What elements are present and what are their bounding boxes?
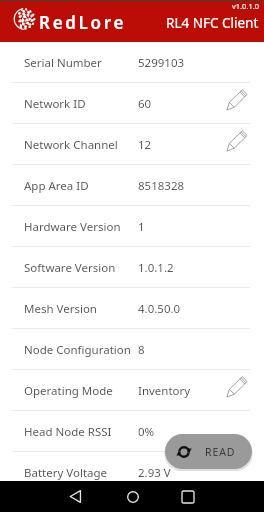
button[interactable]: Back xyxy=(60,481,91,512)
staticText: 1 xyxy=(138,219,145,235)
button[interactable]: Operating Mode xyxy=(0,370,264,411)
button[interactable]: Edit Network ID xyxy=(223,86,251,114)
staticText: Node Configuration xyxy=(24,342,131,358)
staticText: 12 xyxy=(138,137,152,153)
button[interactable]: READ xyxy=(165,434,252,469)
button[interactable]: Network ID xyxy=(0,83,264,124)
staticText: 1.0.1.2 xyxy=(138,260,174,276)
button[interactable]: Home xyxy=(117,481,148,512)
staticText: 2.93 V xyxy=(138,465,171,481)
button[interactable]: Hardware Version xyxy=(0,206,264,247)
staticText: Software Version xyxy=(24,260,116,276)
staticText: 0% xyxy=(138,424,155,440)
staticText: RL4 NFC Client xyxy=(166,14,259,32)
staticText: 60 xyxy=(138,96,152,112)
staticText: Network Channel xyxy=(24,137,118,153)
staticText: 4.0.50.0 xyxy=(138,301,181,317)
button[interactable]: Software Version xyxy=(0,247,264,288)
staticText: Head Node RSSI xyxy=(24,424,112,440)
staticText: Battery Voltage xyxy=(24,465,108,481)
staticText: v1.0.1.0 xyxy=(232,1,259,11)
staticText: 8 xyxy=(138,342,145,358)
staticText: Inventory xyxy=(138,383,191,399)
staticText: 5299103 xyxy=(138,55,185,71)
staticText: Serial Number xyxy=(24,55,102,71)
staticText: Operating Mode xyxy=(24,383,113,399)
staticText: READ xyxy=(205,445,236,459)
button[interactable]: App Area ID xyxy=(0,165,264,206)
staticText: 8518328 xyxy=(138,178,185,194)
button[interactable]: Serial Number xyxy=(0,42,264,83)
staticText: App Area ID xyxy=(24,178,89,194)
staticText: RedLore xyxy=(39,11,127,34)
button[interactable]: Head Node RSSI xyxy=(0,411,264,452)
button[interactable]: Edit Operating Mode xyxy=(223,373,251,401)
button[interactable]: Edit Network Channel xyxy=(223,127,251,155)
button[interactable]: Battery Voltage xyxy=(0,452,264,493)
button[interactable]: Network Channel xyxy=(0,124,264,165)
staticText: Network ID xyxy=(24,96,86,112)
staticText: Hardware Version xyxy=(24,219,121,235)
button[interactable]: Recent apps xyxy=(172,481,203,512)
staticText: Mesh Version xyxy=(24,301,97,317)
button[interactable]: Node Configuration xyxy=(0,329,264,370)
button[interactable]: Mesh Version xyxy=(0,288,264,329)
